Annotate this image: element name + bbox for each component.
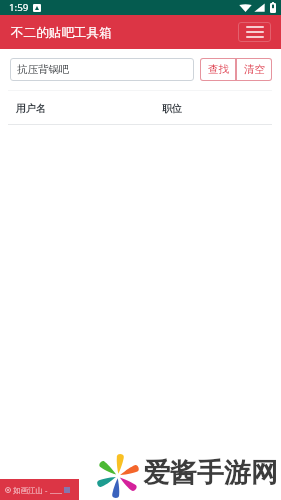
button[interactable]: 查找 [200,58,236,81]
staticText: 清空 [244,63,265,76]
staticText: 如画江山 - [13,485,48,495]
staticText: 查找 [208,63,229,76]
staticText: 抗压背锅吧 [17,63,70,76]
button[interactable]: 抗压背锅吧 [10,58,194,81]
staticText: 1:59 [9,1,29,14]
staticText: 职位 [162,102,182,115]
staticText: 爱酱手游网 [143,456,278,490]
button[interactable]: 清空 [236,58,272,81]
staticText: 不二的贴吧工具箱 [11,25,112,41]
button[interactable]: Menu [238,22,271,42]
staticText: 用户名 [16,102,46,115]
